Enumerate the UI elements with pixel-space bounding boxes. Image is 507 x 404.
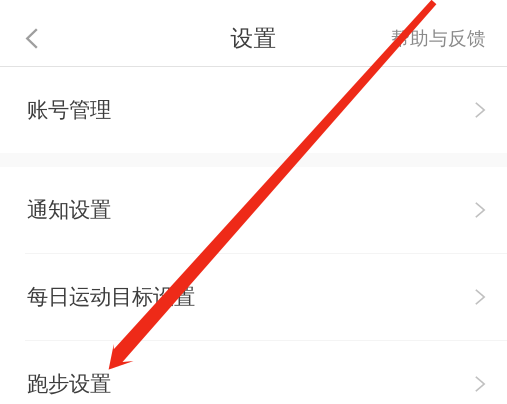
button[interactable]: 跑步设置: [0, 341, 507, 404]
button[interactable]: 通知设置: [0, 167, 507, 253]
button[interactable]: 账号管理: [0, 67, 507, 153]
staticText: 跑步设置: [27, 371, 111, 397]
staticText: 设置: [230, 25, 276, 52]
staticText: 每日运动目标设置: [27, 284, 195, 310]
staticText: 账号管理: [27, 97, 111, 123]
button[interactable]: 帮助与反馈: [357, 0, 507, 66]
button[interactable]: 每日运动目标设置: [0, 254, 507, 340]
staticText: 通知设置: [27, 197, 111, 223]
staticText: 帮助与反馈: [391, 27, 486, 50]
button[interactable]: Back: [0, 0, 80, 66]
